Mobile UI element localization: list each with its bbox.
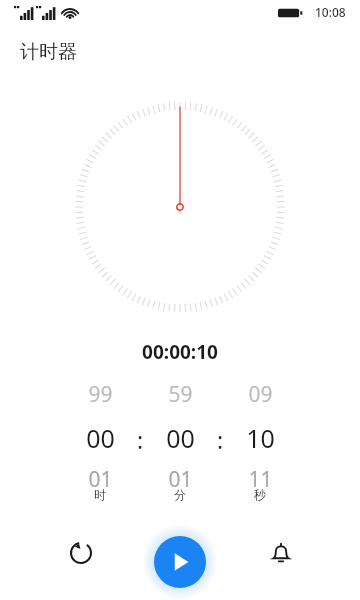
button[interactable]: 59 bbox=[146, 380, 214, 492]
staticText: 分 bbox=[160, 487, 200, 502]
staticText: 01 bbox=[168, 465, 193, 492]
staticText: 00 bbox=[86, 421, 115, 455]
staticText: 99 bbox=[88, 380, 113, 409]
staticText: 09 bbox=[248, 380, 273, 409]
staticText: 00:00:10 bbox=[0, 339, 360, 365]
staticText: : bbox=[128, 424, 152, 455]
staticText: 59 bbox=[168, 380, 193, 409]
button[interactable]: Ringtone bbox=[258, 530, 304, 576]
staticText: 计时器 bbox=[20, 40, 77, 64]
staticText: 01 bbox=[88, 465, 113, 492]
button[interactable]: 99 bbox=[66, 380, 134, 492]
staticText: 10 bbox=[246, 421, 275, 455]
staticText: 时 bbox=[80, 487, 120, 502]
staticText: 11 bbox=[248, 465, 273, 492]
button[interactable]: 09 bbox=[226, 380, 294, 492]
staticText: 秒 bbox=[240, 487, 280, 502]
staticText: 10:08 bbox=[315, 4, 346, 20]
button[interactable]: Start bbox=[154, 536, 206, 588]
staticText: 00 bbox=[166, 421, 195, 455]
button[interactable]: Reset bbox=[58, 530, 104, 576]
staticText: : bbox=[208, 424, 232, 455]
